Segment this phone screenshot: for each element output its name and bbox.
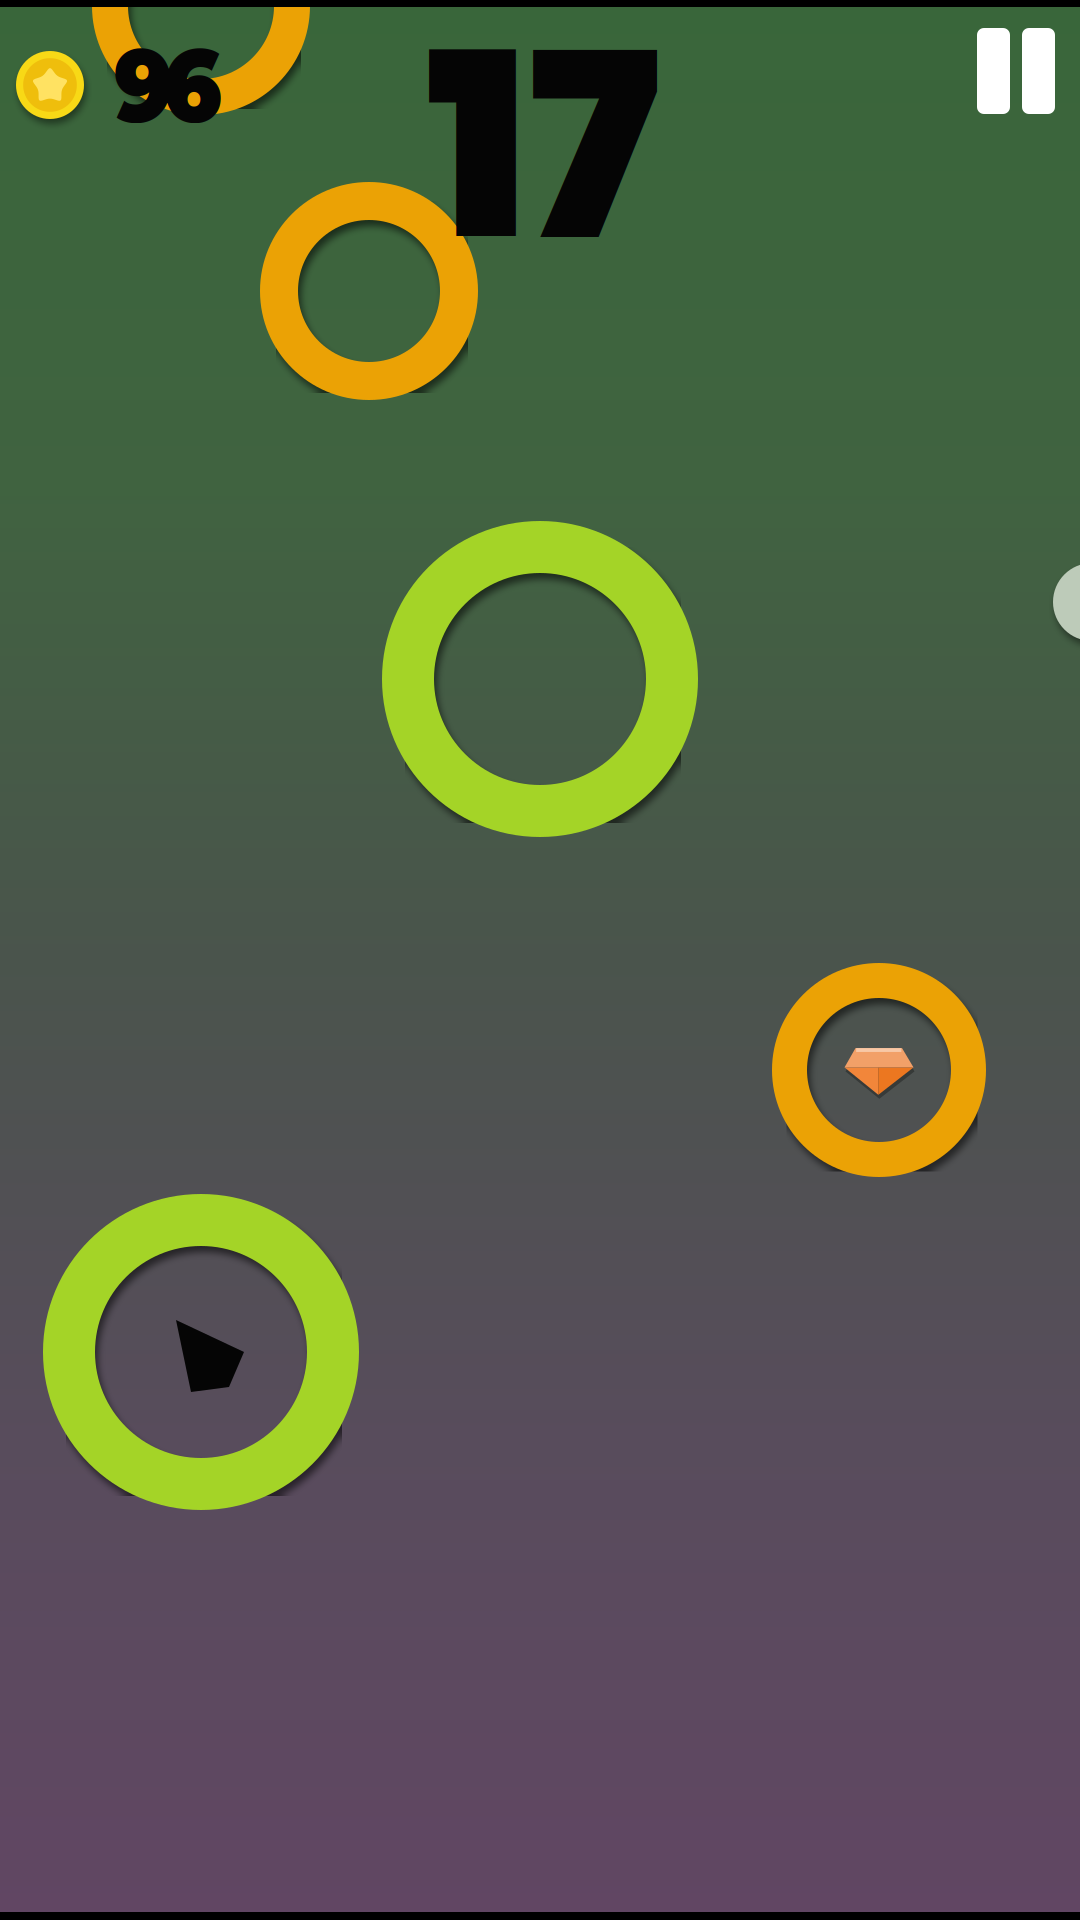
staticText: 96 [107, 23, 229, 147]
button[interactable]: Pause [977, 28, 1055, 114]
staticText: 17 [426, 0, 659, 326]
